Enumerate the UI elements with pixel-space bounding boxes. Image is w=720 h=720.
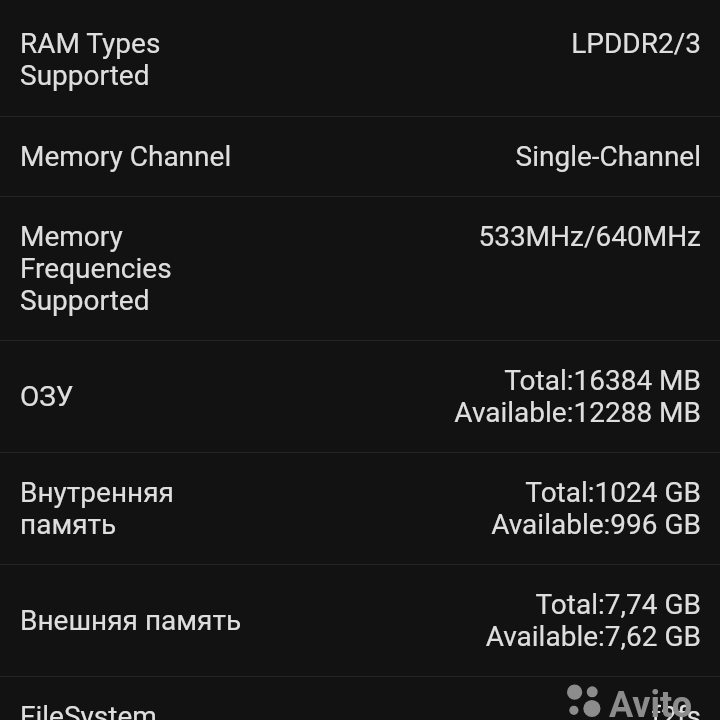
- other: Avito watermark: [566, 684, 706, 720]
- staticText: RAM Types Supported: [20, 27, 571, 92]
- staticText: Memory Channel: [20, 140, 515, 173]
- staticText: Внутренняя память: [20, 476, 491, 541]
- staticText: FileSystem: [20, 700, 651, 720]
- staticText: ОЗУ: [20, 380, 454, 413]
- staticText: Total:16384 MB Available:12288 MB: [454, 364, 701, 429]
- staticText: LPDDR2/3: [571, 27, 701, 60]
- button[interactable]: Внешняя память: [0, 565, 720, 676]
- staticText: Single-Channel: [515, 140, 701, 173]
- staticText: Внешняя память: [20, 604, 485, 637]
- button[interactable]: ОЗУ: [0, 341, 720, 452]
- staticText: Avito: [609, 684, 693, 720]
- button[interactable]: Внутренняя память: [0, 453, 720, 564]
- button[interactable]: RAM Types Supported: [0, 4, 720, 115]
- button[interactable]: Memory Channel: [0, 117, 720, 196]
- button[interactable]: FileSystem: [0, 677, 720, 720]
- staticText: f2fs: [651, 700, 701, 720]
- button[interactable]: Memory Frequencies Supported: [0, 197, 720, 340]
- staticText: 533MHz/640MHz: [478, 220, 701, 253]
- staticText: Total:7,74 GB Available:7,62 GB: [485, 588, 701, 653]
- staticText: Memory Frequencies Supported: [20, 220, 478, 317]
- staticText: Total:1024 GB Available:996 GB: [491, 476, 701, 541]
